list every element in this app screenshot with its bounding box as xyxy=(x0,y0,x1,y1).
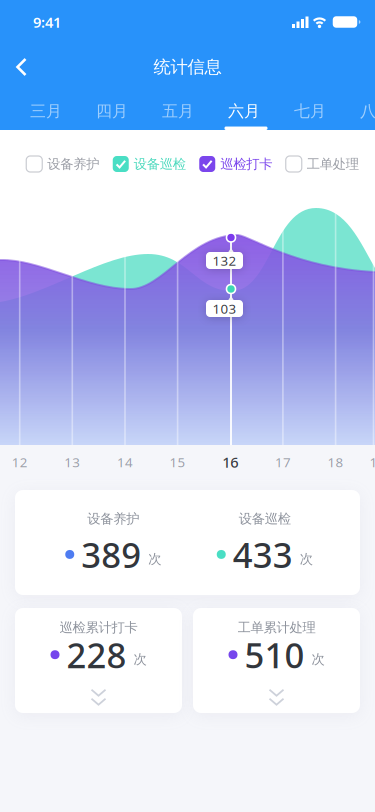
staticText: 13 xyxy=(64,453,80,471)
button[interactable]: Back xyxy=(0,47,36,87)
staticText: 132 xyxy=(212,252,236,269)
staticText: 四月 xyxy=(96,101,128,121)
button[interactable]: 五月 xyxy=(162,101,194,121)
staticText: 六月 xyxy=(228,101,260,121)
staticText: 八月 xyxy=(360,101,375,121)
staticText: 次 xyxy=(133,651,146,667)
button[interactable]: 巡检累计打卡 xyxy=(15,608,182,713)
staticText: 433 xyxy=(233,531,293,577)
button[interactable]: 设备巡检 xyxy=(113,156,186,172)
staticText: 12 xyxy=(12,453,28,471)
staticText: 14 xyxy=(117,453,133,471)
staticText: 五月 xyxy=(162,101,194,121)
staticText: 103 xyxy=(212,300,236,317)
staticText: 次 xyxy=(311,651,324,667)
staticText: 七月 xyxy=(294,101,326,121)
staticText: 设备养护 xyxy=(47,156,99,172)
staticText: 228 xyxy=(66,632,126,678)
button[interactable]: 工单处理 xyxy=(286,156,359,172)
staticText: 1 xyxy=(369,453,375,471)
staticText: 工单处理 xyxy=(307,156,359,172)
staticText: 15 xyxy=(170,453,186,471)
button[interactable]: 设备养护 xyxy=(26,156,99,172)
button[interactable]: 八月 xyxy=(360,101,375,121)
staticText: 17 xyxy=(275,453,291,471)
button[interactable]: 七月 xyxy=(294,101,326,121)
button[interactable]: 四月 xyxy=(96,101,128,121)
staticText: 统计信息 xyxy=(153,56,221,78)
staticText: 510 xyxy=(244,632,304,678)
staticText: 三月 xyxy=(30,101,62,121)
button[interactable]: 工单累计处理 xyxy=(193,608,360,713)
staticText: 9:41 xyxy=(33,12,61,32)
button[interactable]: 六月 xyxy=(228,101,260,121)
staticText: 次 xyxy=(148,551,161,567)
button[interactable]: 设备养护 xyxy=(15,490,360,595)
staticText: 18 xyxy=(328,453,344,471)
staticText: 设备养护 xyxy=(87,510,139,527)
staticText: 设备巡检 xyxy=(239,510,291,527)
staticText: 工单累计处理 xyxy=(237,619,315,636)
staticText: 次 xyxy=(300,551,313,567)
staticText: 389 xyxy=(81,531,141,577)
button[interactable]: 三月 xyxy=(30,101,62,121)
button[interactable]: 巡检打卡 xyxy=(199,156,272,172)
staticText: 设备巡检 xyxy=(134,156,186,172)
staticText: 巡检累计打卡 xyxy=(59,619,137,636)
staticText: 16 xyxy=(222,452,238,472)
staticText: 巡检打卡 xyxy=(220,156,272,172)
